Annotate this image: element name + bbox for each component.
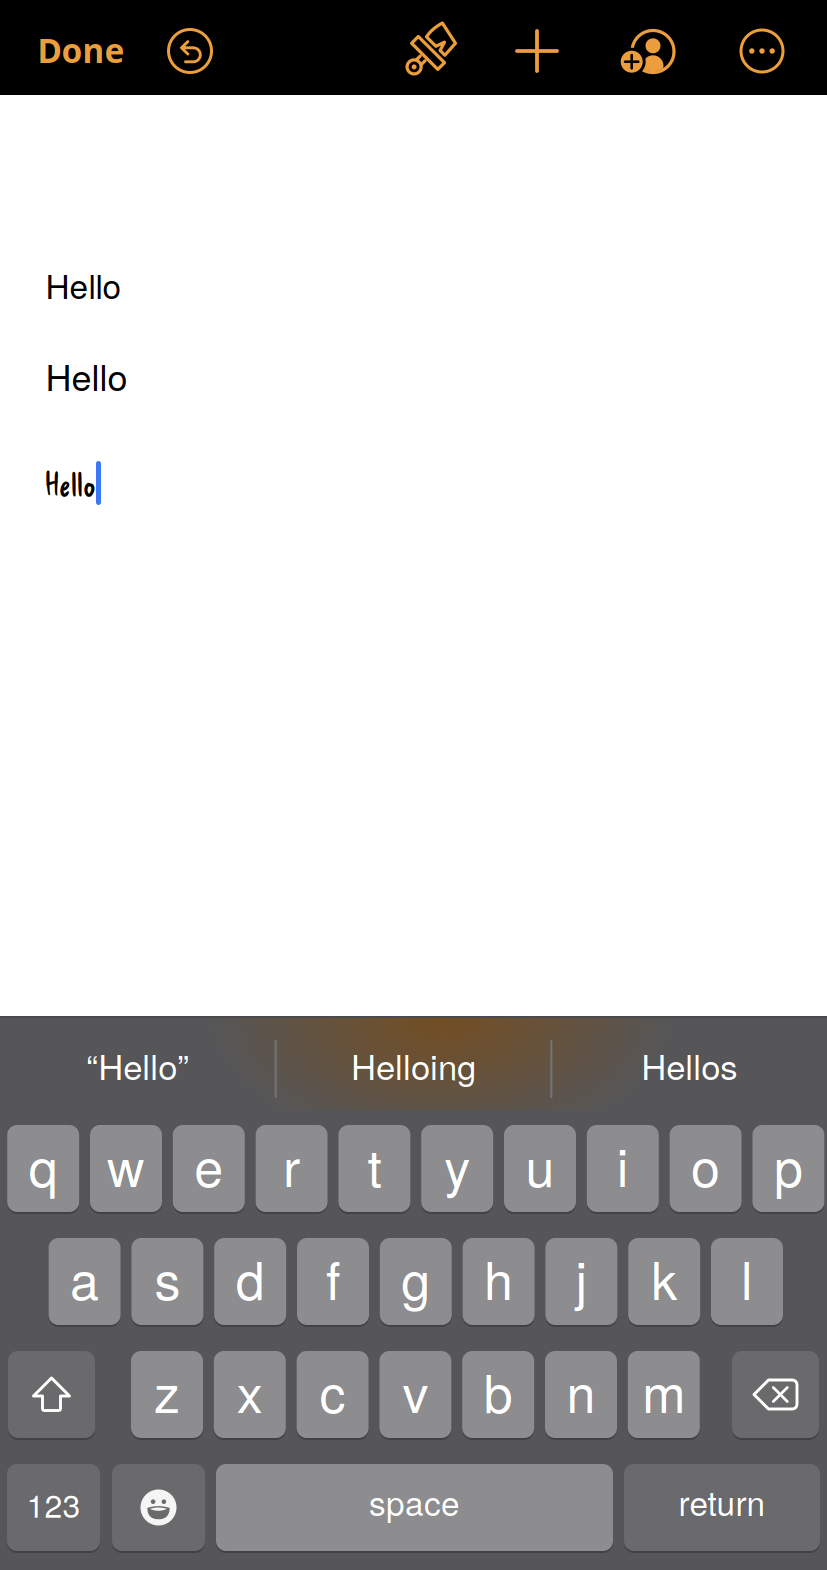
button[interactable]: u bbox=[504, 1124, 576, 1213]
staticText: m bbox=[642, 1353, 685, 1428]
button[interactable]: Helloing bbox=[278, 1015, 548, 1115]
button[interactable]: t bbox=[338, 1124, 410, 1213]
button[interactable]: Shift bbox=[8, 1350, 95, 1439]
staticText: h bbox=[484, 1240, 513, 1315]
button[interactable]: x bbox=[214, 1350, 286, 1439]
button[interactable]: Share with people bbox=[621, 28, 673, 76]
staticText: e bbox=[194, 1127, 223, 1202]
staticText: a bbox=[70, 1240, 99, 1315]
button[interactable]: n bbox=[545, 1350, 617, 1439]
staticText: s bbox=[154, 1240, 180, 1315]
button[interactable]: y bbox=[421, 1124, 493, 1213]
staticText: space bbox=[369, 1478, 460, 1525]
staticText: 123 bbox=[26, 1481, 80, 1527]
button[interactable]: l bbox=[711, 1237, 783, 1326]
button[interactable]: w bbox=[90, 1124, 162, 1213]
staticText: p bbox=[774, 1127, 803, 1202]
staticText: y bbox=[444, 1127, 470, 1202]
button[interactable]: Hellos bbox=[554, 1015, 824, 1115]
button[interactable]: Format bbox=[398, 19, 462, 83]
staticText: j bbox=[575, 1240, 587, 1315]
staticText: Hello bbox=[45, 261, 121, 308]
staticText: x bbox=[237, 1353, 263, 1428]
staticText: “Hello” bbox=[86, 1040, 189, 1090]
staticText: r bbox=[283, 1127, 300, 1202]
staticText: o bbox=[691, 1127, 720, 1202]
button[interactable]: c bbox=[297, 1350, 369, 1439]
staticText: Done bbox=[37, 27, 124, 73]
staticText: v bbox=[402, 1353, 428, 1428]
staticText: q bbox=[29, 1127, 58, 1202]
staticText: f bbox=[326, 1240, 340, 1315]
button[interactable]: o bbox=[670, 1124, 742, 1213]
button[interactable]: p bbox=[752, 1124, 824, 1213]
staticText: k bbox=[651, 1240, 677, 1315]
button[interactable]: s bbox=[131, 1237, 203, 1326]
button[interactable]: f bbox=[297, 1237, 369, 1326]
staticText: return bbox=[678, 1478, 765, 1525]
staticText: Helloing bbox=[351, 1040, 476, 1090]
button[interactable]: “Hello” bbox=[3, 1015, 273, 1115]
button[interactable]: j bbox=[545, 1237, 617, 1326]
staticText: w bbox=[107, 1127, 145, 1202]
button[interactable]: g bbox=[380, 1237, 452, 1326]
button[interactable]: Add bbox=[517, 31, 557, 71]
button[interactable]: i bbox=[587, 1124, 659, 1213]
staticText: Hellos bbox=[641, 1040, 737, 1090]
staticText: Hello bbox=[45, 350, 127, 401]
button[interactable]: d bbox=[214, 1237, 286, 1326]
button[interactable]: k bbox=[628, 1237, 700, 1326]
staticText: n bbox=[566, 1353, 595, 1428]
staticText: d bbox=[236, 1240, 265, 1315]
button[interactable]: r bbox=[256, 1124, 328, 1213]
button[interactable]: a bbox=[49, 1237, 121, 1326]
button[interactable]: 123 bbox=[7, 1463, 100, 1552]
staticText: Hello bbox=[45, 463, 96, 503]
button[interactable]: Done bbox=[37, 27, 124, 73]
button[interactable]: return bbox=[624, 1463, 820, 1552]
button[interactable]: space bbox=[216, 1463, 613, 1552]
button[interactable]: Undo bbox=[168, 29, 211, 72]
button[interactable]: h bbox=[463, 1237, 535, 1326]
button[interactable]: More bbox=[741, 30, 783, 72]
button[interactable]: Emoji bbox=[112, 1463, 205, 1552]
staticText: b bbox=[484, 1353, 513, 1428]
button[interactable]: z bbox=[131, 1350, 203, 1439]
button[interactable]: q bbox=[7, 1124, 79, 1213]
staticText: g bbox=[401, 1240, 430, 1315]
button[interactable]: e bbox=[173, 1124, 245, 1213]
staticText: t bbox=[367, 1127, 381, 1202]
button[interactable]: b bbox=[462, 1350, 534, 1439]
staticText: c bbox=[320, 1353, 346, 1428]
staticText: i bbox=[617, 1127, 629, 1202]
staticText: l bbox=[741, 1240, 753, 1315]
button[interactable]: m bbox=[628, 1350, 700, 1439]
button[interactable]: v bbox=[379, 1350, 451, 1439]
staticText: u bbox=[525, 1127, 554, 1202]
button[interactable]: Delete bbox=[732, 1350, 819, 1439]
staticText: z bbox=[154, 1353, 180, 1428]
